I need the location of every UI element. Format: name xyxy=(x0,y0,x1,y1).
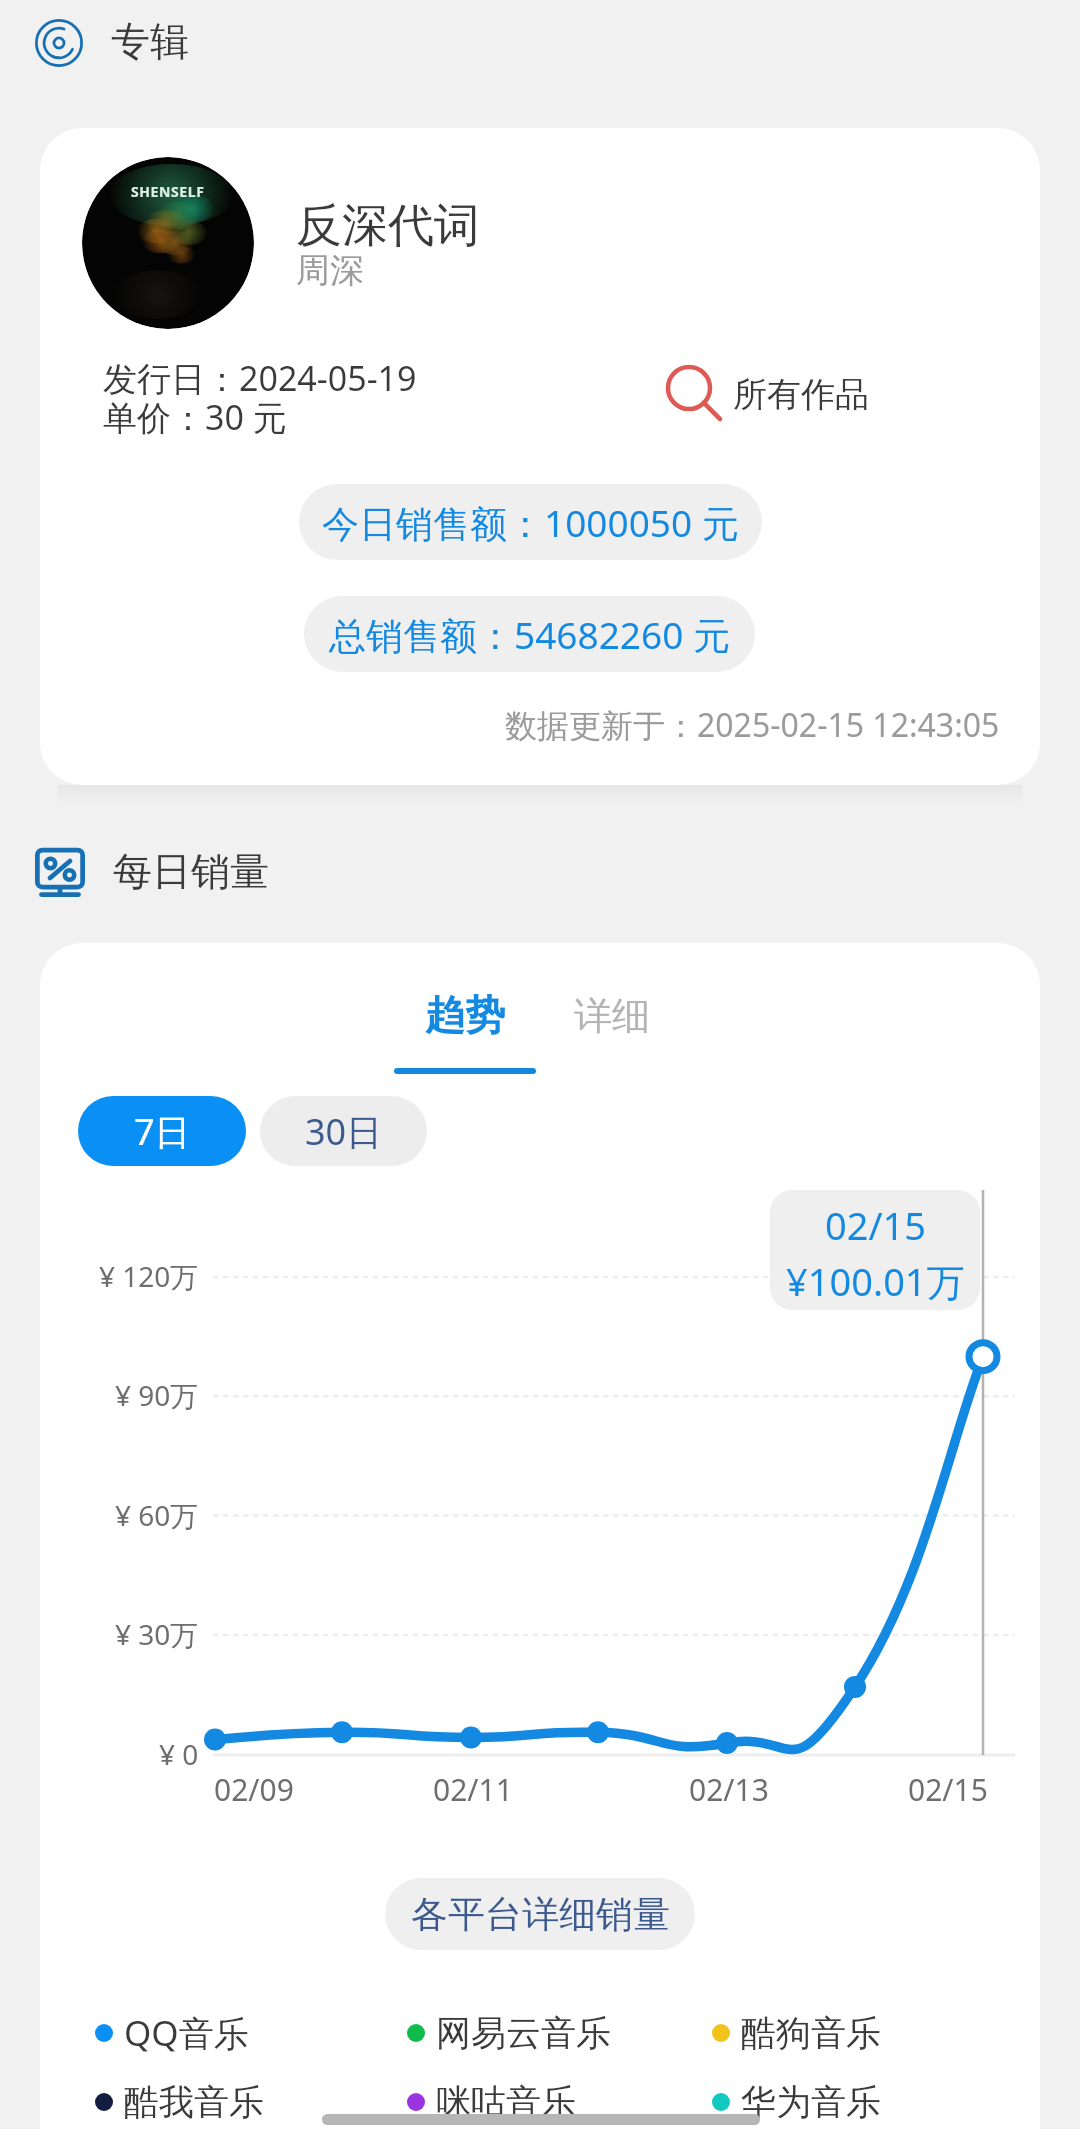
staticText: 详细 xyxy=(574,992,650,1040)
staticText: 30日 xyxy=(305,1107,383,1156)
staticText: 02/09 xyxy=(214,1769,294,1810)
staticText: 02/11 xyxy=(433,1769,513,1810)
button[interactable]: 专辑封面 反深代词 xyxy=(82,157,254,329)
button[interactable]: 酷狗音乐 xyxy=(712,2004,962,2062)
button[interactable]: 网易云音乐 xyxy=(407,2004,697,2062)
staticText: 02/15 xyxy=(908,1769,988,1810)
staticText: 周深 xyxy=(296,249,364,292)
button[interactable]: 今日销售额：1000050 元 xyxy=(299,484,762,560)
staticText: 数据更新于：2025-02-15 12:43:05 xyxy=(505,703,1000,747)
staticText: 7日 xyxy=(134,1107,191,1156)
staticText: 网易云音乐 xyxy=(436,2011,611,2055)
staticText: 华为音乐 xyxy=(741,2080,881,2124)
staticText: 酷我音乐 xyxy=(124,2080,264,2124)
other: 搜索所有作品 xyxy=(665,366,721,422)
staticText: 每日销量 xyxy=(113,847,269,896)
staticText: 反深代词 xyxy=(296,197,480,255)
staticText: 02/15 xyxy=(825,1199,927,1251)
button[interactable]: 各平台详细销量 xyxy=(385,1878,695,1950)
button[interactable]: 咪咕音乐 xyxy=(407,2073,697,2129)
staticText: 02/13 xyxy=(689,1769,769,1810)
staticText: 发行日：2024-05-19 xyxy=(103,355,417,401)
button[interactable]: 华为音乐 xyxy=(712,2073,962,2129)
button[interactable]: 酷我音乐 xyxy=(95,2073,345,2129)
staticText: ¥ 0 xyxy=(159,1735,199,1773)
button[interactable]: 搜索所有作品 xyxy=(665,363,915,425)
staticText: ¥ 30万 xyxy=(115,1615,199,1653)
staticText: QQ音乐 xyxy=(124,2009,249,2057)
button[interactable]: 7日 xyxy=(78,1096,246,1166)
button[interactable]: QQ音乐 xyxy=(95,2004,345,2062)
button[interactable]: 趋势 xyxy=(394,984,536,1046)
staticText: SHENSELF xyxy=(131,182,205,201)
staticText: ¥ 120万 xyxy=(99,1257,199,1295)
staticText: 总销售额：54682260 元 xyxy=(329,609,730,660)
staticText: 今日销售额：1000050 元 xyxy=(322,497,739,548)
staticText: ¥100.01万 xyxy=(786,1255,965,1307)
other: 每日销量 xyxy=(35,847,85,897)
button[interactable]: 每日销量 xyxy=(35,843,285,901)
staticText: 咪咕音乐 xyxy=(436,2080,576,2124)
button[interactable]: 详细 xyxy=(556,985,668,1047)
staticText: ¥ 60万 xyxy=(115,1496,199,1534)
other: 专辑 xyxy=(35,19,83,67)
staticText: 趋势 xyxy=(425,990,505,1040)
button[interactable]: 专辑 xyxy=(35,14,235,72)
staticText: 专辑 xyxy=(111,17,189,66)
staticText: 单价：30 元 xyxy=(103,394,287,440)
staticText: 所有作品 xyxy=(733,373,869,416)
staticText: 酷狗音乐 xyxy=(741,2011,881,2055)
button[interactable]: 总销售额：54682260 元 xyxy=(304,596,755,672)
staticText: ¥ 90万 xyxy=(115,1376,199,1414)
button[interactable]: 30日 xyxy=(260,1096,427,1166)
staticText: 各平台详细销量 xyxy=(411,1891,670,1938)
